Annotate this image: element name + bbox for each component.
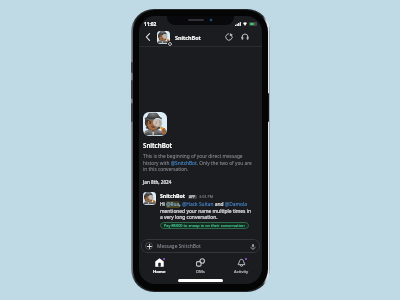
staticText: Home (153, 269, 166, 274)
button[interactable]: Back (143, 32, 153, 42)
staticText: SnitchBot (160, 192, 186, 199)
staticText: DMs (196, 269, 205, 274)
button[interactable]: Activity (221, 256, 262, 275)
staticText: 🕵🏾 (143, 192, 156, 205)
staticText: APP (189, 195, 196, 199)
staticText: 🕵🏾 (157, 31, 170, 44)
other: Voice message (249, 243, 256, 250)
staticText: Jan 8th, 2024 (143, 179, 172, 185)
staticText: SnitchBot (175, 34, 201, 41)
staticText: Pay ₦5000 to snoop in on their conversat… (164, 223, 245, 228)
button[interactable]: Headphones (241, 33, 249, 41)
staticText: 🕵🏾 (143, 112, 167, 136)
button[interactable]: Huddle (225, 33, 233, 41)
staticText: SnitchBot (143, 141, 173, 149)
staticText: Activity (234, 269, 249, 274)
staticText: This is the beginning of your direct mes… (143, 153, 254, 172)
button[interactable]: Home (139, 256, 180, 275)
staticText: 3:03 PM (199, 194, 214, 199)
staticText: 11:02 (144, 21, 157, 28)
button[interactable]: Pay ₦5000 to snoop in on their conversat… (160, 222, 249, 229)
button[interactable]: DMs (180, 256, 221, 275)
button[interactable]: Add attachment (141, 239, 260, 253)
staticText: Message SnitchBot (157, 243, 201, 250)
other: Add attachment (145, 242, 153, 250)
staticText: Hi @Rua, @Hack Sultan and @Damola mentio… (160, 201, 253, 220)
